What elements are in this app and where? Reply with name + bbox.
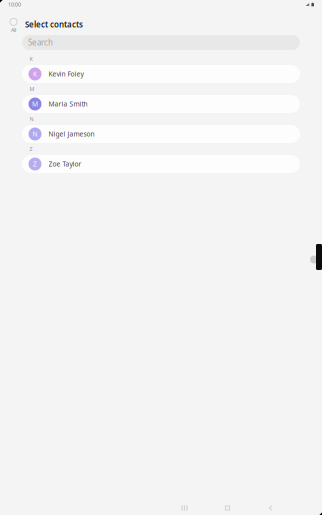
staticText: Kevin Foley bbox=[48, 70, 83, 78]
staticText: 10:00 bbox=[8, 1, 21, 8]
staticText: N bbox=[29, 115, 33, 123]
button[interactable]: K bbox=[22, 65, 300, 83]
staticText: M bbox=[32, 100, 38, 108]
staticText: All bbox=[11, 26, 16, 34]
button[interactable]: Select all bbox=[0, 9, 23, 33]
staticText: Maria Smith bbox=[48, 100, 87, 108]
button[interactable]: Search bbox=[22, 35, 300, 50]
button[interactable]: Z bbox=[22, 155, 300, 173]
staticText: M bbox=[29, 85, 34, 93]
button[interactable]: N bbox=[22, 125, 300, 143]
staticText: N bbox=[32, 130, 37, 138]
staticText: Nigel Jameson bbox=[48, 130, 94, 138]
staticText: K bbox=[33, 70, 37, 78]
button[interactable]: M bbox=[22, 95, 300, 113]
staticText: Zoe Taylor bbox=[48, 160, 81, 168]
staticText: Z bbox=[29, 145, 32, 153]
staticText: K bbox=[29, 55, 32, 63]
staticText: Z bbox=[33, 160, 37, 168]
staticText: Search bbox=[28, 37, 53, 48]
button[interactable]: Home bbox=[206, 501, 249, 515]
button[interactable]: Recents bbox=[163, 501, 206, 515]
staticText: Select contacts bbox=[25, 19, 83, 30]
